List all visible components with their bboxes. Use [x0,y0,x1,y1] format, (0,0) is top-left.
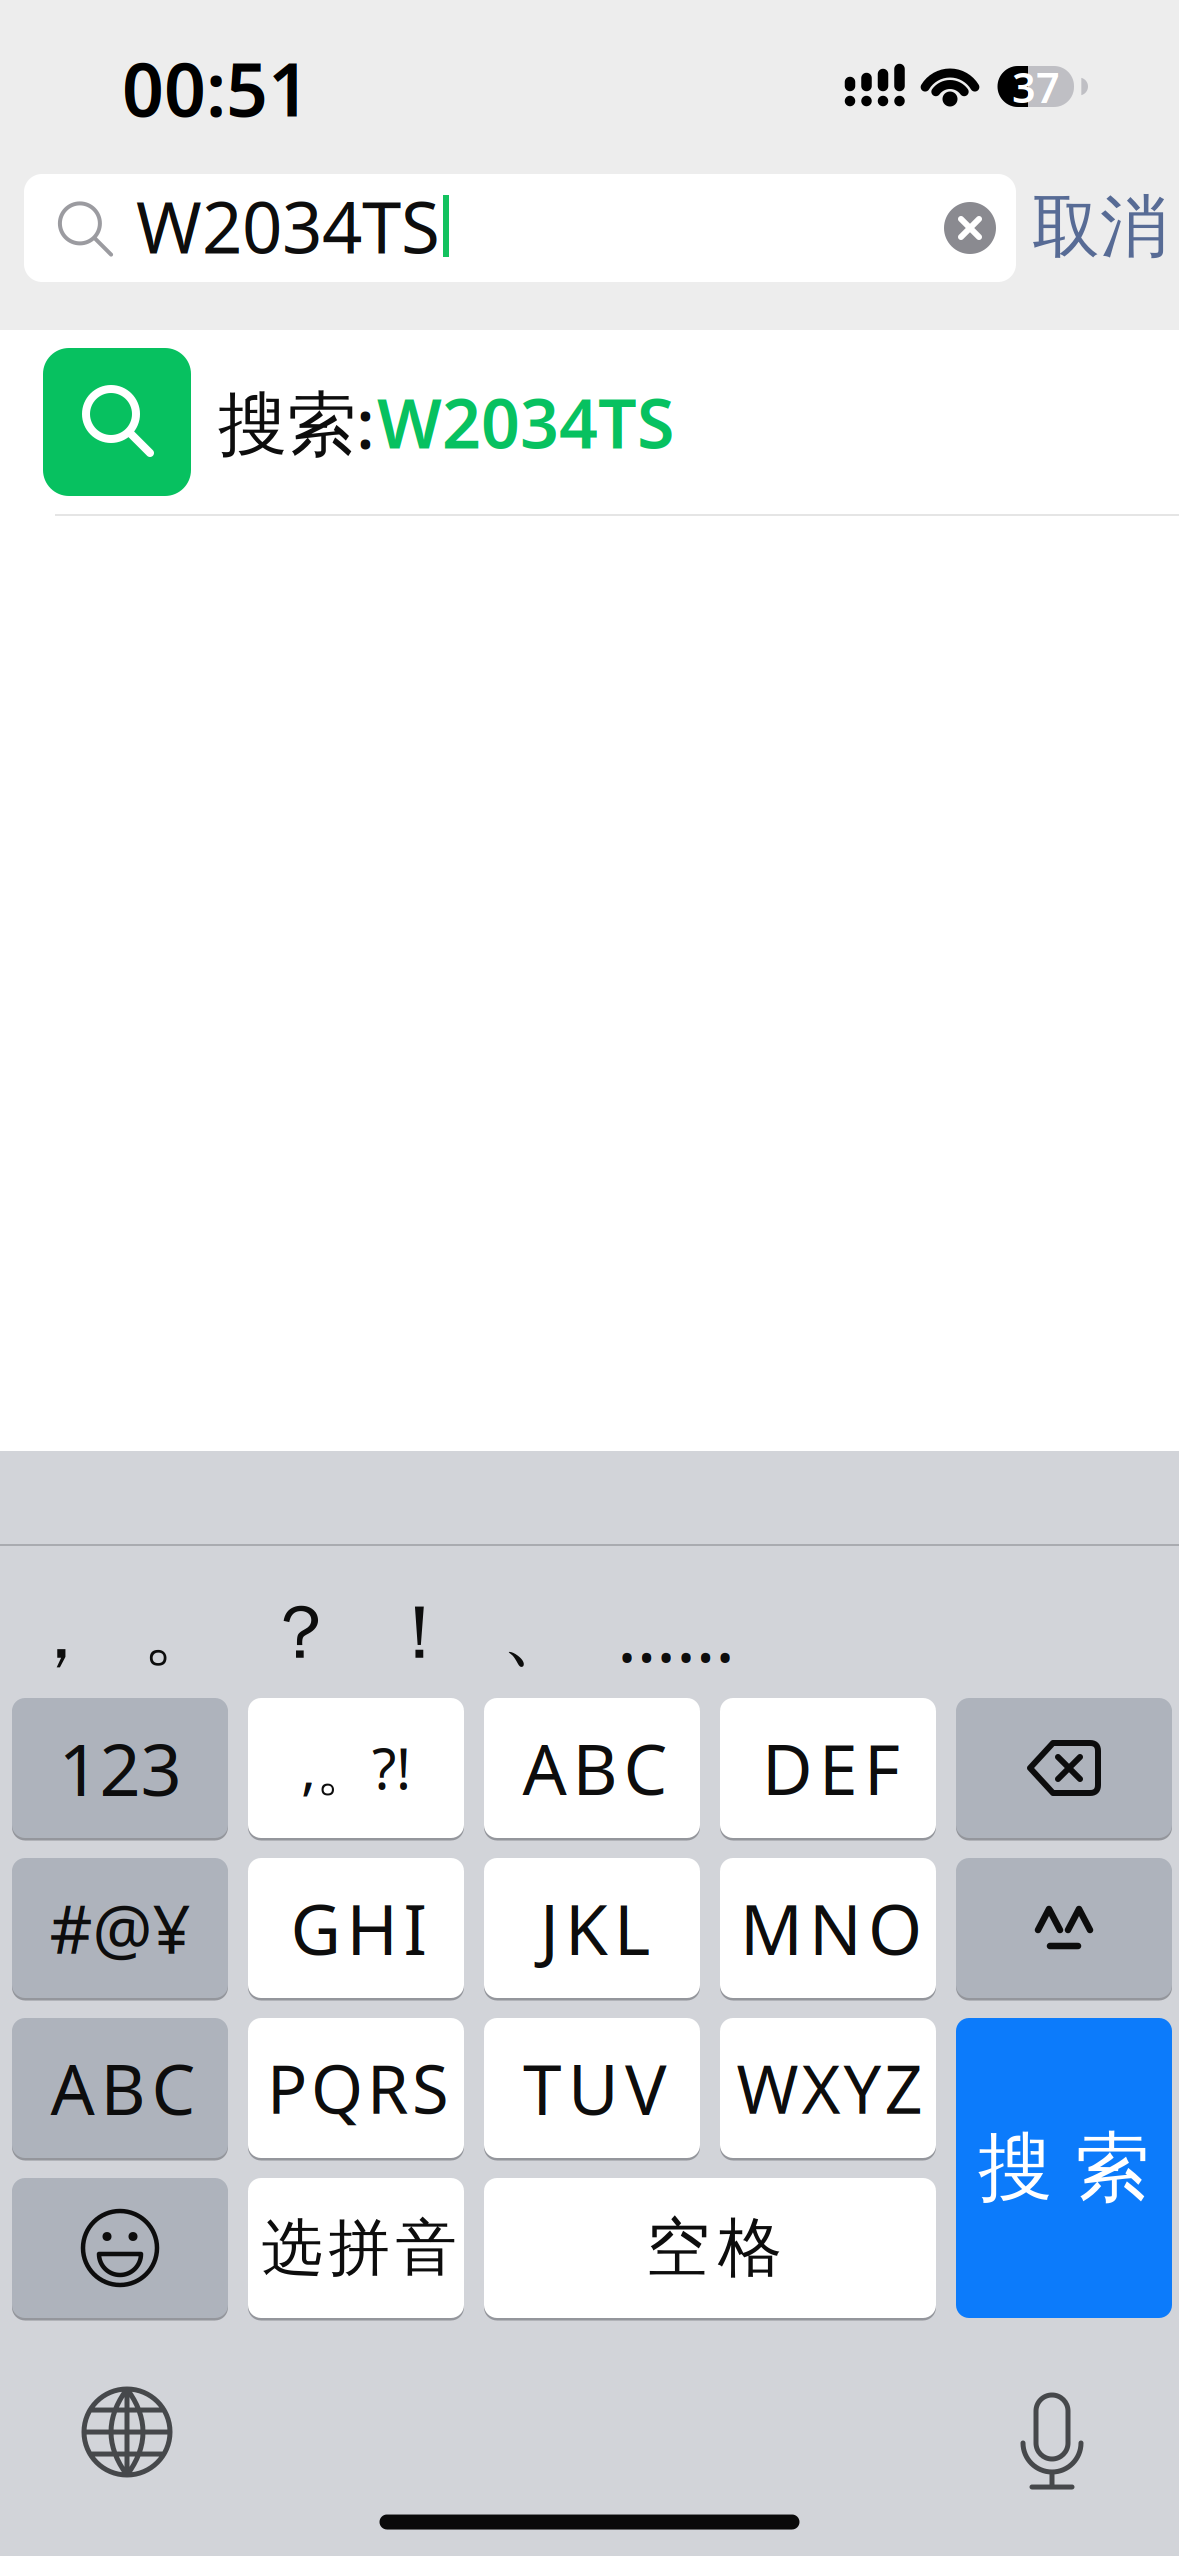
button[interactable]: DEF [720,1698,936,1838]
staticText: 37 [1012,60,1060,114]
staticText: 。 [142,1587,217,1679]
button[interactable]: ABC [484,1698,700,1838]
staticText: ？ [263,1587,338,1679]
button[interactable]: PQRS [248,2018,464,2158]
staticText: 00:51 [122,39,310,137]
staticText: WXYZ [736,2044,922,2132]
button[interactable]: JKL [484,1858,700,1998]
button[interactable]: TUV [484,2018,700,2158]
button[interactable]: ， [6,1573,116,1693]
button[interactable]: 搜索: [0,330,1179,514]
button[interactable]: 搜 索 [956,2018,1172,2318]
staticText: ， [23,1587,98,1679]
staticText: 选拼音 [261,2210,456,2286]
staticText: GHI [290,1882,427,1974]
staticText: DEF [762,1722,900,1814]
staticText: 搜索: [218,376,375,468]
button[interactable]: WXYZ [720,2018,936,2158]
staticText: ABC [50,2042,195,2134]
staticText: ABC [522,1722,667,1814]
button[interactable]: MNO [720,1858,936,1998]
button[interactable]: ,。?! [248,1698,464,1838]
button[interactable]: …… [566,1573,786,1693]
button[interactable]: 。 [125,1573,235,1693]
staticText: …… [617,1583,735,1683]
staticText: 取消 [1032,185,1168,269]
staticText: #@¥ [49,1884,190,1972]
staticText: ,。?! [301,1731,411,1805]
button[interactable]: #@¥ [12,1858,228,1998]
button[interactable]: ？ [246,1573,356,1693]
button[interactable]: 空格 [484,2178,936,2318]
button[interactable]: Emoji [12,2178,228,2318]
button[interactable]: 、 [484,1573,594,1693]
button[interactable]: ！ [365,1573,475,1693]
staticText: PQRS [267,2044,449,2132]
staticText: 空格 [646,2209,782,2287]
button[interactable]: Shift [956,1858,1172,1998]
staticText: 123 [58,1720,181,1816]
staticText: ！ [382,1587,457,1679]
button[interactable]: 选拼音 [248,2178,464,2318]
button[interactable]: Search [24,174,1016,282]
staticText: MNO [740,1882,922,1974]
button[interactable]: Clear text [944,202,996,254]
staticText: 、 [501,1587,576,1679]
button[interactable]: GHI [248,1858,464,1998]
staticText: JKL [540,1882,650,1974]
staticText: 搜 索 [978,2122,1150,2214]
button[interactable]: Dictation [1019,2391,1085,2503]
staticText: W2034TS [136,179,440,273]
button[interactable]: 取消 [1025,182,1175,272]
button[interactable]: ABC [12,2018,228,2158]
button[interactable]: Delete [956,1698,1172,1838]
staticText: W2034TS [377,377,674,467]
staticText: TUV [523,2042,667,2134]
button[interactable]: 123 [12,1698,228,1838]
button[interactable]: Next keyboard [80,2385,174,2479]
